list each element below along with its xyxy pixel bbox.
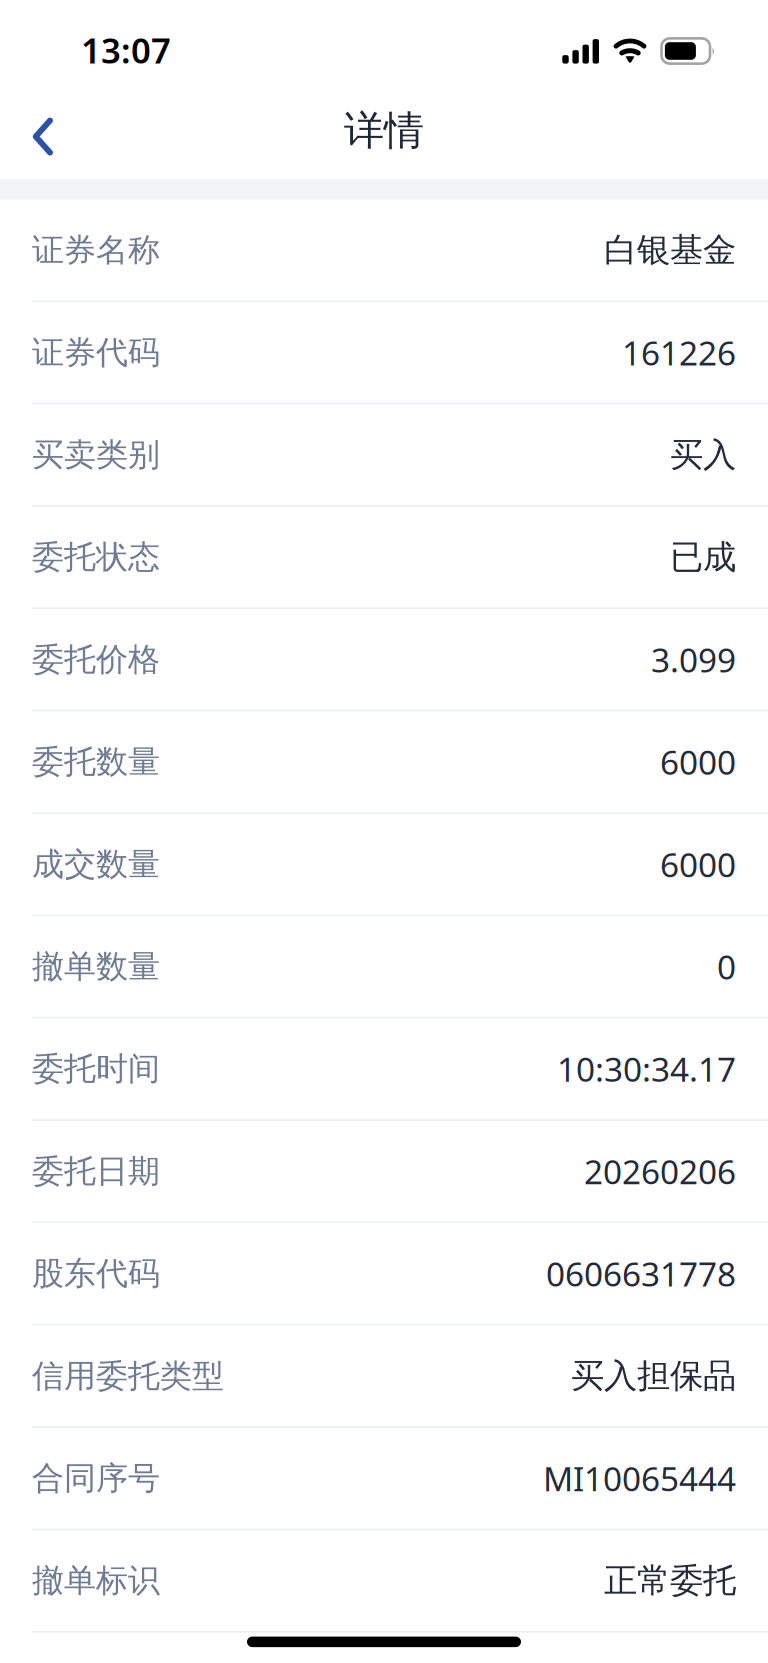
staticText: 证券代码 (32, 333, 160, 372)
staticText: 撤单标识 (32, 1561, 160, 1600)
staticText: 委托价格 (32, 640, 160, 679)
staticText: 买入 (670, 434, 736, 475)
staticText: 3.099 (651, 637, 736, 682)
button[interactable]: Back (0, 96, 82, 178)
staticText: 161226 (622, 330, 736, 375)
staticText: 6000 (660, 842, 736, 886)
staticText: 正常委托 (604, 1560, 736, 1601)
staticText: 证券名称 (32, 230, 160, 270)
staticText: 已成 (670, 537, 736, 578)
staticText: 买入担保品 (571, 1355, 736, 1396)
staticText: 0606631778 (546, 1251, 736, 1296)
staticText: 成交数量 (32, 845, 160, 884)
staticText: 股东代码 (32, 1254, 160, 1293)
staticText: MI10065444 (543, 1456, 736, 1500)
staticText: 0 (717, 944, 736, 989)
staticText: 13:07 (81, 27, 171, 73)
staticText: 委托数量 (32, 742, 160, 781)
staticText: 合同序号 (32, 1459, 160, 1498)
staticText: 6000 (660, 740, 736, 784)
staticText: 委托时间 (32, 1049, 160, 1089)
staticText: 委托日期 (32, 1152, 160, 1191)
staticText: 信用委托类型 (32, 1356, 224, 1396)
staticText: 10:30:34.17 (557, 1047, 736, 1091)
staticText: 撤单数量 (32, 947, 160, 986)
staticText: 委托状态 (32, 537, 160, 577)
staticText: 详情 (344, 106, 424, 155)
staticText: 20260206 (584, 1149, 736, 1193)
staticText: 白银基金 (604, 230, 736, 271)
staticText: 买卖类别 (32, 435, 160, 474)
